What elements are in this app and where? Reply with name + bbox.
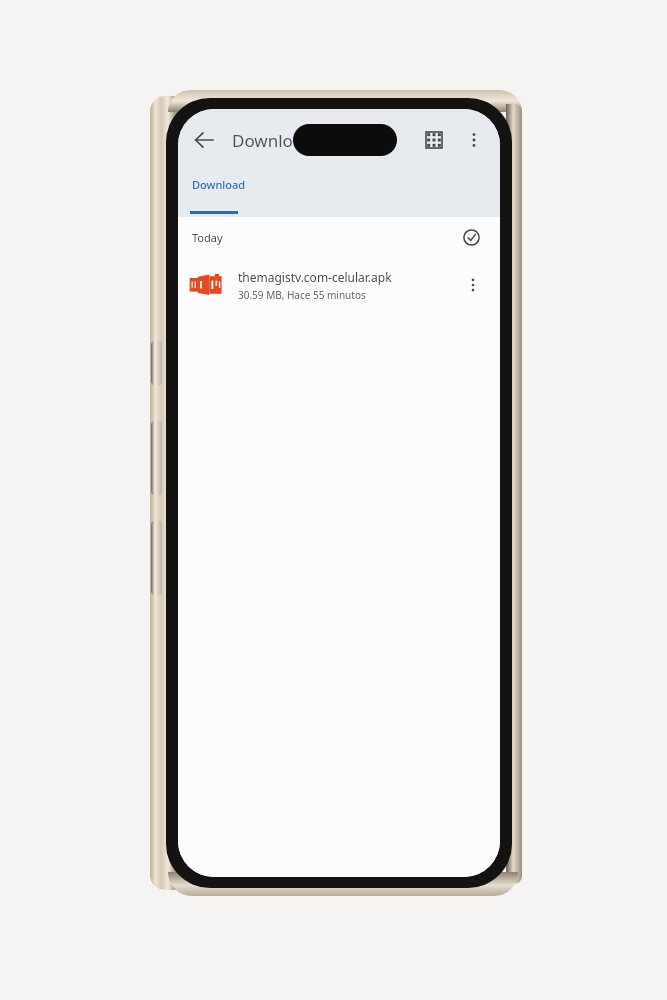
button[interactable]: Download xyxy=(178,171,275,217)
button[interactable]: themagistv.com-celular.apk xyxy=(178,257,500,313)
button[interactable]: More options xyxy=(454,120,494,160)
button[interactable]: Select all xyxy=(456,222,486,252)
staticText: 30.59 MB, Hace 55 minutos xyxy=(238,288,366,302)
staticText: Today xyxy=(192,230,223,245)
staticText: Download xyxy=(192,177,246,192)
staticText: themagistv.com-celular.apk xyxy=(238,269,392,285)
button[interactable]: Grid view xyxy=(414,120,454,160)
button[interactable]: Item options xyxy=(456,268,490,302)
staticText: Download xyxy=(232,129,313,152)
button[interactable]: Back xyxy=(184,120,224,160)
